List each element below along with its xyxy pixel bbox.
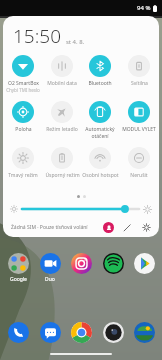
- other: Úsporný režim: [51, 147, 73, 169]
- button[interactable]: Úsporný režim: [43, 147, 81, 179]
- button[interactable]: Chrome: [68, 322, 94, 343]
- button[interactable]: Duo: [37, 253, 63, 283]
- staticText: Google: [10, 276, 27, 283]
- button[interactable]: Poloha: [4, 101, 42, 133]
- staticText: O2 SmartBox: [8, 80, 39, 87]
- button[interactable]: Play: [131, 253, 157, 274]
- button[interactable]: Bluetooth: [81, 55, 119, 87]
- staticText: Bluetooth: [88, 80, 112, 87]
- staticText: Úsporný režim: [45, 172, 80, 179]
- other: MODUL VYLET: [128, 101, 150, 123]
- staticText: Chybí TMI heslo: [6, 87, 40, 93]
- button[interactable]: Tmavý režim: [4, 147, 42, 179]
- staticText: Nerušit: [130, 172, 148, 179]
- button[interactable]: Svítilna: [120, 55, 158, 87]
- staticText: st 4. 8.: [66, 38, 85, 46]
- staticText: Tmavý režim: [8, 172, 38, 179]
- button[interactable]: Photos: [131, 322, 157, 343]
- other: Svítilna: [128, 55, 150, 77]
- button[interactable]: Camera: [100, 322, 126, 343]
- staticText: Osobní hotspot: [82, 172, 119, 179]
- button[interactable]: Phone: [5, 322, 31, 343]
- other: Automatický otáčení: [89, 101, 111, 123]
- staticText: Duo: [45, 276, 55, 283]
- staticText: Automatický otáčení: [85, 126, 115, 139]
- other: Nerušit: [128, 147, 150, 169]
- button[interactable]: MODUL VYLET: [120, 101, 158, 133]
- button[interactable]: Automatický otáčení: [81, 101, 119, 139]
- other: Tmavý režim: [12, 147, 34, 169]
- button[interactable]: Messages: [37, 322, 63, 343]
- button[interactable]: Nerušit: [120, 147, 158, 179]
- other: Režim letadlo: [51, 101, 73, 123]
- other: O2 SmartBox: [12, 55, 34, 77]
- button[interactable]: Osobní hotspot: [81, 147, 119, 179]
- button[interactable]: User: [103, 222, 114, 233]
- button[interactable]: Edit: [121, 221, 133, 233]
- button[interactable]: [22, 203, 139, 215]
- other: Osobní hotspot: [89, 147, 111, 169]
- staticText: MODUL VYLET: [122, 126, 156, 133]
- other: Poloha: [12, 101, 34, 123]
- button[interactable]: Režim letadlo: [43, 101, 81, 133]
- staticText: Mobilní data: [47, 80, 77, 87]
- staticText: 94 %: [137, 4, 151, 12]
- staticText: Žádná SIM · Pouze tísňová volání: [11, 224, 88, 231]
- staticText: Svítilna: [131, 80, 148, 87]
- other: Mobilní data: [51, 55, 73, 77]
- button[interactable]: Mobilní data: [43, 55, 81, 87]
- button[interactable]: Spotify: [100, 253, 126, 274]
- button[interactable]: Settings: [140, 221, 152, 233]
- other: Bluetooth: [89, 55, 111, 77]
- staticText: Režim letadlo: [46, 126, 78, 133]
- button[interactable]: O2 SmartBox: [4, 55, 42, 93]
- staticText: Poloha: [15, 126, 32, 133]
- staticText: 15:50: [13, 23, 62, 49]
- button[interactable]: Google: [5, 253, 31, 283]
- button[interactable]: Instagram: [68, 253, 94, 274]
